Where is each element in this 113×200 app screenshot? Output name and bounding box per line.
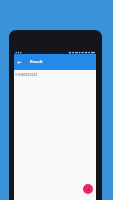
staticText: Result — [30, 59, 43, 65]
button[interactable]: Back — [14, 57, 25, 68]
staticText: 51680094241 — [15, 72, 38, 77]
button[interactable]: Share — [83, 184, 93, 194]
